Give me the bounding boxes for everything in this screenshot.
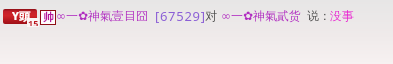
- staticText: ∞一✿神氣貳货: [221, 8, 302, 23]
- staticText: Y頭: [12, 9, 30, 23]
- staticText: 没事: [330, 8, 354, 23]
- staticText: [67529]: [155, 7, 206, 25]
- staticText: 帅: [43, 10, 54, 23]
- button[interactable]: Level badge: [3, 9, 37, 24]
- staticText: 说：: [307, 8, 331, 23]
- staticText: 对: [205, 8, 217, 23]
- staticText: 15: [28, 17, 39, 26]
- staticText: ∞一✿神氣壹目囧: [56, 8, 149, 23]
- button[interactable]: Shuai badge: [41, 11, 55, 24]
